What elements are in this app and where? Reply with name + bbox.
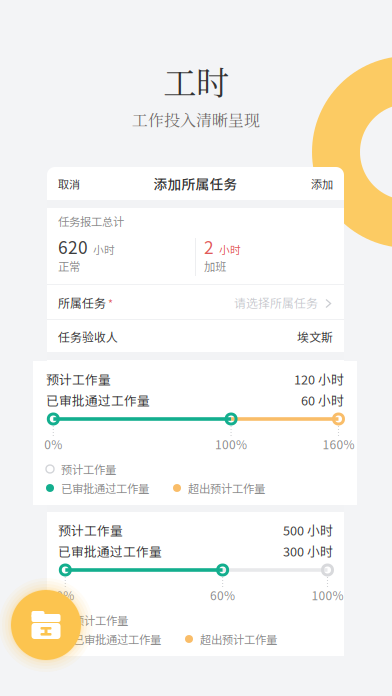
staticText: 0% <box>56 434 74 452</box>
staticText: 预计工作量 <box>61 461 116 477</box>
staticText: 预计工作量 <box>46 370 111 388</box>
staticText: 620 <box>58 234 88 259</box>
staticText: 超出预计工作量 <box>200 479 277 495</box>
staticText: 添加所属任务 <box>153 174 237 193</box>
staticText: 工时 <box>163 57 229 105</box>
staticText: 已审批通过工作量 <box>61 480 149 496</box>
button[interactable]: 取消 <box>47 167 113 200</box>
staticText: 预计工作量 <box>58 521 123 539</box>
staticText: 添加 <box>311 175 333 192</box>
staticText: 超出预计工作量 <box>200 631 277 647</box>
staticText: 预计工作量 <box>58 369 123 387</box>
staticText: 工作投入清晰呈现 <box>132 108 260 131</box>
staticText: 取消 <box>58 175 80 192</box>
staticText: 800 小时 <box>283 369 333 387</box>
staticText: 任务报工总计 <box>58 213 124 229</box>
staticText: 2 <box>204 234 214 259</box>
staticText: 0% <box>44 435 62 453</box>
staticText: 70% <box>236 434 261 452</box>
staticText: 120 小时 <box>294 370 344 388</box>
staticText: 300 小时 <box>283 542 333 560</box>
staticText: 60% <box>210 586 235 604</box>
staticText: 700 小时 <box>283 390 333 408</box>
button[interactable]: Work log <box>0 578 93 672</box>
staticText: 100% <box>311 434 343 452</box>
staticText: 预计工作量 <box>73 612 128 628</box>
staticText: 60 小时 <box>301 391 344 409</box>
staticText: 超出预计工作量 <box>188 480 265 496</box>
staticText: 所属任务 <box>58 294 106 311</box>
staticText: 160% <box>322 435 354 453</box>
staticText: 0% <box>56 586 74 604</box>
staticText: 已审批通过工作量 <box>58 390 162 408</box>
button[interactable]: 所属任务 <box>47 285 344 320</box>
staticText: 500 小时 <box>283 521 333 539</box>
staticText: 正常 <box>58 258 80 274</box>
staticText: 任务验收人 <box>58 328 118 345</box>
staticText: 埃文斯 <box>297 328 333 345</box>
staticText: 已审批通过工作量 <box>58 542 162 560</box>
staticText: 小时 <box>93 242 115 257</box>
staticText: 预计工作量 <box>73 460 128 476</box>
staticText: 已审批通过工作量 <box>46 391 150 409</box>
button[interactable]: 添加 <box>278 167 344 200</box>
staticText: 请选择所属任务 <box>234 294 318 311</box>
staticText: 100% <box>215 435 247 453</box>
staticText: 已审批通过工作量 <box>73 631 161 647</box>
staticText: 已审批通过工作量 <box>73 479 161 495</box>
staticText: 100% <box>311 586 343 604</box>
staticText: * <box>106 295 113 310</box>
staticText: 加班 <box>204 258 226 274</box>
staticText: 小时 <box>219 242 241 257</box>
